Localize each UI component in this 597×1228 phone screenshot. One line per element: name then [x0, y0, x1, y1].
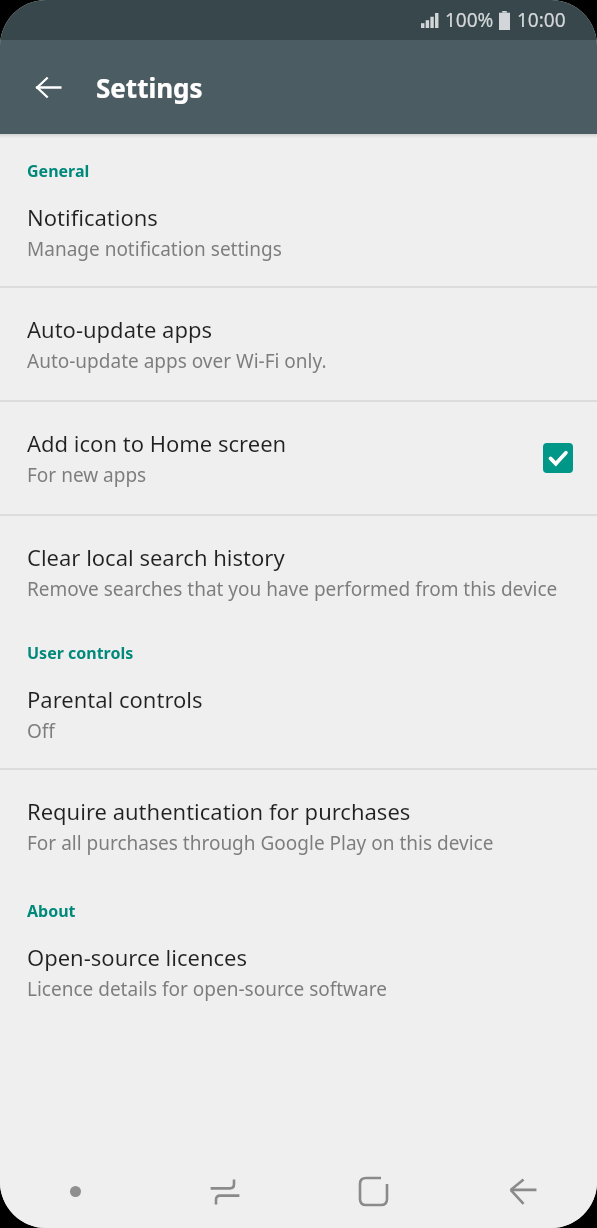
staticText: Add icon to Home screen: [27, 428, 287, 458]
button[interactable]: Menu: [0, 1155, 150, 1228]
staticText: Remove searches that you have performed …: [27, 576, 558, 602]
staticText: Parental controls: [27, 684, 203, 714]
button[interactable]: Recents: [150, 1155, 299, 1228]
staticText: Manage notification settings: [27, 236, 282, 262]
staticText: Clear local search history: [27, 542, 285, 572]
button[interactable]: Back: [22, 61, 74, 113]
staticText: Notifications: [27, 202, 158, 232]
staticText: Settings: [96, 70, 203, 105]
button[interactable]: Clear local search history: [0, 516, 597, 620]
staticText: Off: [27, 718, 55, 744]
staticText: For all purchases through Google Play on…: [27, 830, 494, 856]
staticText: Auto-update apps: [27, 314, 212, 344]
button[interactable]: Open-source licences: [0, 938, 597, 1026]
button[interactable]: Add icon to Home screen: [0, 402, 597, 514]
button[interactable]: Add icon to Home screen checkbox: [543, 443, 573, 473]
button[interactable]: Notifications: [0, 198, 597, 286]
staticText: Require authentication for purchases: [27, 796, 411, 826]
staticText: User controls: [27, 642, 134, 664]
button[interactable]: Auto-update apps: [0, 288, 597, 400]
staticText: Licence details for open-source software: [27, 976, 387, 1002]
staticText: 10:00: [517, 7, 566, 33]
staticText: About: [27, 900, 76, 922]
button[interactable]: Home: [299, 1155, 448, 1228]
button[interactable]: Back: [448, 1155, 597, 1228]
staticText: For new apps: [27, 462, 147, 488]
staticText: 100%: [445, 7, 494, 33]
staticText: Auto-update apps over Wi-Fi only.: [27, 348, 327, 374]
button[interactable]: Parental controls: [0, 680, 597, 768]
button[interactable]: Require authentication for purchases: [0, 770, 597, 878]
staticText: Open-source licences: [27, 942, 248, 972]
staticText: General: [27, 160, 90, 182]
